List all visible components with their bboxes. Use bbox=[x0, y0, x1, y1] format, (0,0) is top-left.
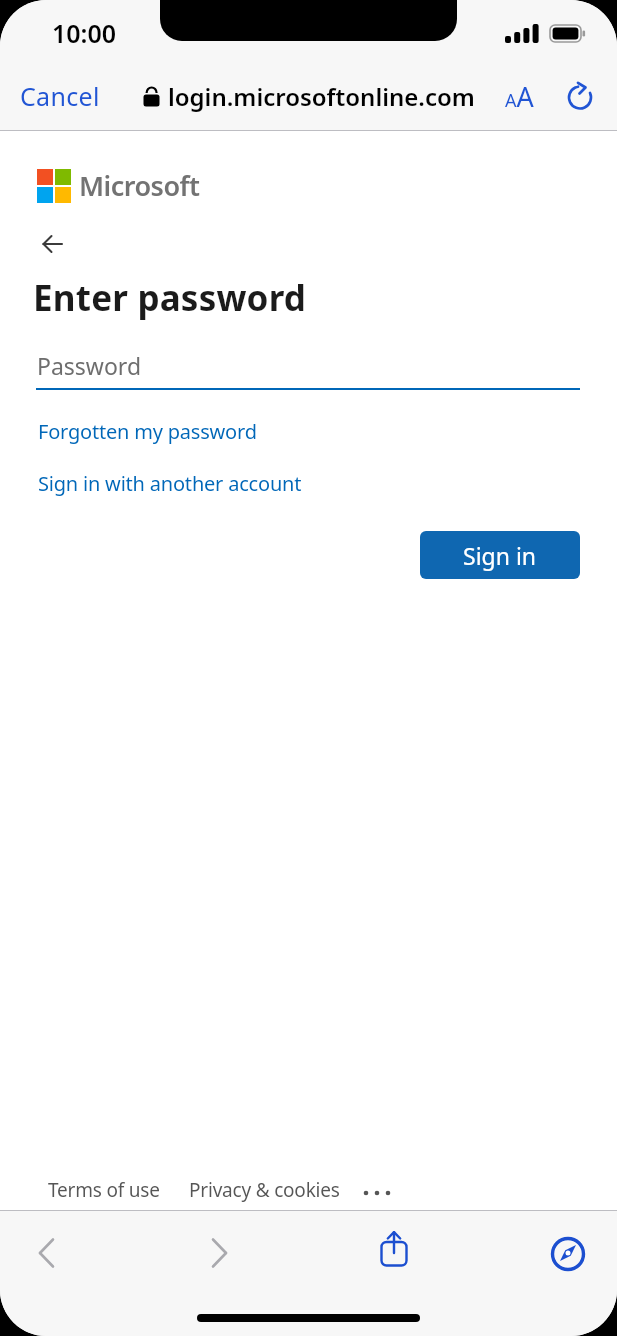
button[interactable]: Terms of use bbox=[48, 1177, 160, 1203]
staticText: Password bbox=[37, 350, 142, 381]
staticText: Terms of use bbox=[48, 1177, 160, 1203]
staticText: 10:00 bbox=[52, 16, 117, 50]
staticText: Sign in with another account bbox=[38, 470, 302, 497]
button[interactable]: Sign in bbox=[420, 531, 580, 579]
staticText: Microsoft bbox=[79, 167, 200, 204]
button[interactable] bbox=[210, 1238, 228, 1268]
staticText: login.microsoftonline.com bbox=[168, 80, 475, 113]
button[interactable]: AA bbox=[505, 78, 534, 115]
button[interactable] bbox=[551, 1237, 585, 1271]
button[interactable] bbox=[42, 234, 64, 254]
staticText: Forgotten my password bbox=[38, 418, 257, 445]
staticText: Sign in bbox=[463, 540, 537, 571]
staticText: AA bbox=[505, 78, 534, 115]
button[interactable] bbox=[362, 1189, 394, 1197]
staticText: Enter password bbox=[33, 274, 307, 322]
staticText: Privacy & cookies bbox=[189, 1177, 340, 1203]
button[interactable] bbox=[567, 82, 593, 112]
button[interactable] bbox=[38, 1238, 56, 1268]
button[interactable]: Cancel bbox=[20, 79, 100, 113]
button[interactable] bbox=[379, 1231, 409, 1267]
staticText: Cancel bbox=[20, 79, 100, 113]
button[interactable]: Privacy & cookies bbox=[189, 1177, 340, 1203]
button[interactable]: Sign in with another account bbox=[38, 470, 302, 497]
button[interactable]: Forgotten my password bbox=[38, 418, 257, 445]
